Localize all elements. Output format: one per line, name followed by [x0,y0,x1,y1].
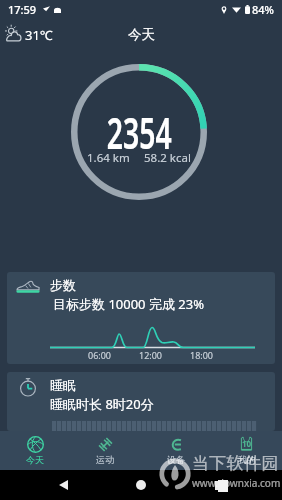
button[interactable]: Recents [204,470,234,500]
staticText: 17:59 [8,2,37,17]
staticText: 10 [242,438,252,449]
staticText: 当下软件园 [192,453,279,474]
staticText: 18:00 [190,349,214,361]
staticText: 84% [252,2,274,17]
button[interactable]: 今天 [0,431,70,470]
staticText: 睡眠时长 8时20分 [50,395,154,413]
staticText: 步数 [50,277,76,293]
button[interactable]: Back [48,470,78,500]
staticText: 58.2 kcal [144,150,191,166]
staticText: 今天 [26,454,44,465]
button[interactable]: 睡眠 [7,372,275,431]
staticText: 我的 [238,454,256,465]
staticText: 2354 [107,103,172,162]
button[interactable]: Home [126,470,156,500]
staticText: 运动 [96,454,114,465]
button[interactable]: 设备 [140,431,211,470]
staticText: 设备 [167,454,185,465]
staticText: 31℃ [25,26,53,44]
staticText: 12:00 [139,349,163,361]
staticText: 06:00 [88,349,112,361]
staticText: 今天 [128,26,155,43]
staticText: www.downxia.com [192,476,281,490]
staticText: 1.64 km [87,150,130,166]
button[interactable]: 10 [211,431,282,470]
button[interactable]: 步数 [7,272,275,364]
staticText: 睡眠 [50,377,76,393]
button[interactable]: 运动 [70,431,140,470]
staticText: 目标步数 10000 完成 23% [53,295,204,313]
